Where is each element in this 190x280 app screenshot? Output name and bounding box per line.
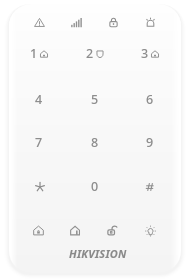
button[interactable]: 3 bbox=[127, 38, 173, 68]
button[interactable]: 1 bbox=[16, 38, 62, 68]
button[interactable]: Disarm bbox=[100, 218, 124, 242]
staticText: 0 bbox=[91, 178, 99, 195]
staticText: 5 bbox=[91, 91, 99, 108]
staticText: HIKVISION bbox=[69, 246, 127, 261]
staticText: 8 bbox=[91, 134, 99, 151]
button[interactable]: 9 bbox=[127, 127, 173, 157]
staticText: 1 bbox=[30, 45, 38, 62]
staticText: 3 bbox=[141, 45, 149, 62]
button[interactable]: 7 bbox=[16, 127, 62, 157]
staticText: 7 bbox=[35, 134, 43, 151]
button[interactable]: Star bbox=[17, 172, 63, 202]
button[interactable]: Hash bbox=[127, 172, 173, 202]
button[interactable]: Light bbox=[138, 218, 162, 242]
button[interactable]: Away arm bbox=[63, 218, 87, 242]
staticText: 6 bbox=[146, 91, 154, 108]
button[interactable]: Fault bbox=[27, 10, 51, 34]
staticText: 4 bbox=[35, 91, 43, 108]
staticText: 2 bbox=[86, 45, 94, 62]
button[interactable]: 6 bbox=[127, 84, 173, 114]
button[interactable]: Armed bbox=[101, 10, 125, 34]
button[interactable]: 5 bbox=[72, 84, 118, 114]
button[interactable]: 8 bbox=[72, 127, 118, 157]
button[interactable]: Stay arm bbox=[26, 218, 50, 242]
button[interactable]: 2 bbox=[72, 38, 118, 68]
staticText: 9 bbox=[146, 134, 154, 151]
button[interactable]: Signal strength bbox=[64, 10, 88, 34]
button[interactable]: 4 bbox=[16, 84, 62, 114]
button[interactable]: 0 bbox=[72, 171, 118, 201]
button[interactable]: Alarm bbox=[138, 10, 162, 34]
